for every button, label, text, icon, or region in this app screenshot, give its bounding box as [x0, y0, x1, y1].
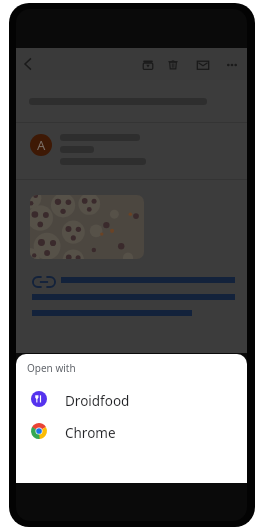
button[interactable]: Archive — [139, 56, 157, 74]
button[interactable]: Delete — [164, 56, 182, 74]
button[interactable]: Back — [18, 55, 36, 73]
button[interactable]: More options — [223, 56, 241, 74]
button[interactable]: Droidfood — [16, 388, 247, 414]
staticText: Chrome — [65, 424, 116, 442]
staticText: A — [37, 136, 46, 154]
staticText: Droidfood — [65, 392, 130, 410]
staticText: Open with — [27, 361, 76, 375]
button[interactable]: Mail — [194, 56, 212, 74]
button[interactable]: Chrome — [16, 420, 247, 446]
